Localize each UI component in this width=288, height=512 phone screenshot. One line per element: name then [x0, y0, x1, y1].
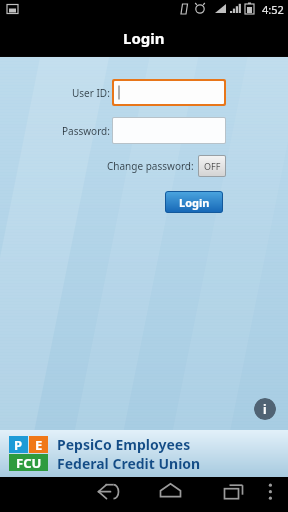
staticText: Login: [179, 195, 210, 210]
staticText: i: [263, 401, 267, 417]
staticText: Federal Credit Union: [57, 454, 201, 473]
button[interactable]: Home: [148, 477, 193, 512]
button[interactable]: [114, 81, 224, 104]
staticText: E: [35, 436, 43, 453]
staticText: FCU: [16, 454, 42, 471]
staticText: Change password:: [107, 159, 194, 173]
staticText: User ID:: [72, 86, 110, 100]
button[interactable]: More options: [256, 477, 288, 512]
button[interactable]: Information: [254, 398, 276, 420]
button[interactable]: Login: [165, 191, 223, 213]
staticText: P: [14, 436, 23, 453]
staticText: OFF: [204, 160, 221, 172]
button[interactable]: Recent apps: [211, 477, 256, 512]
staticText: PepsiCo Employees: [57, 435, 191, 454]
staticText: 4:52: [262, 2, 284, 17]
staticText: Password:: [62, 124, 110, 138]
staticText: Login: [123, 28, 165, 48]
button[interactable]: OFF: [199, 156, 225, 176]
button[interactable]: Back: [85, 477, 130, 512]
